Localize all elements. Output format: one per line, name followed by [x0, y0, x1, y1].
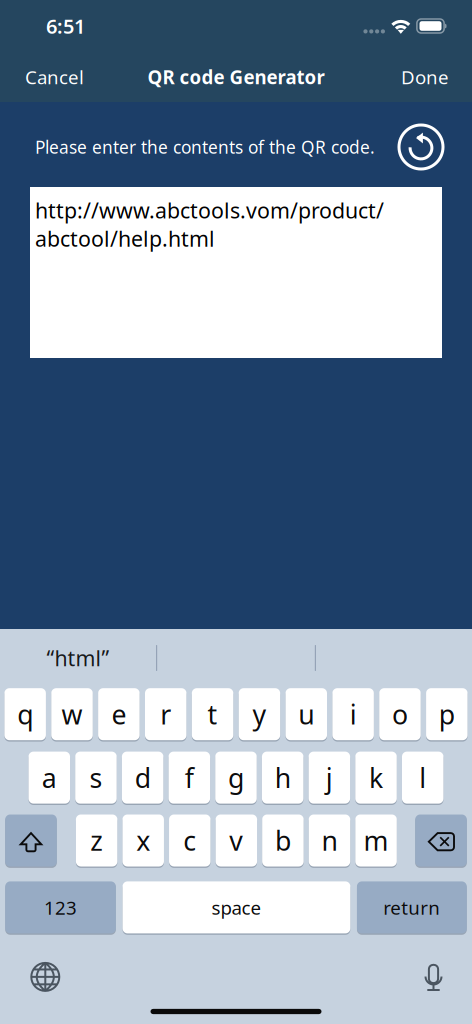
button[interactable]: “html” [0, 629, 156, 686]
button[interactable]: j [309, 751, 350, 804]
staticText: l [419, 760, 426, 795]
staticText: 6:51 [46, 13, 85, 39]
button[interactable]: y [239, 687, 280, 741]
button[interactable]: o [379, 687, 421, 741]
button[interactable]: Reset [398, 124, 444, 170]
staticText: g [228, 760, 244, 795]
staticText: x [136, 823, 150, 858]
button[interactable]: l [402, 751, 443, 804]
button[interactable]: z [76, 814, 117, 867]
staticText: Please enter the contents of the QR code… [35, 135, 375, 158]
button[interactable]: r [145, 687, 186, 741]
button[interactable]: f [169, 751, 210, 804]
staticText: f [185, 760, 194, 795]
button[interactable]: w [51, 687, 93, 741]
button[interactable]: x [122, 814, 164, 867]
staticText: q [17, 696, 33, 732]
button[interactable]: s [75, 751, 117, 804]
staticText: 123 [44, 895, 77, 920]
staticText: k [369, 760, 383, 795]
button[interactable]: i [332, 687, 374, 741]
button[interactable]: n [309, 814, 350, 867]
staticText: p [439, 696, 455, 732]
staticText: Done [401, 65, 449, 89]
staticText: c [183, 823, 196, 858]
staticText: “html” [46, 644, 109, 672]
button[interactable]: 123 [5, 881, 116, 934]
staticText: a [42, 760, 57, 795]
button[interactable]: q [4, 687, 46, 741]
staticText: z [90, 823, 103, 858]
button[interactable]: p [426, 687, 468, 741]
button[interactable]: c [169, 814, 210, 867]
button[interactable]: Cancel [0, 53, 100, 101]
button[interactable]: t [192, 687, 233, 741]
button[interactable]: u [285, 687, 327, 741]
staticText: i [350, 696, 357, 732]
staticText: w [61, 696, 82, 732]
staticText: j [326, 760, 333, 795]
staticText: r [160, 696, 171, 732]
button[interactable]: h [262, 751, 303, 804]
button[interactable]: g [215, 751, 257, 804]
button[interactable]: e [98, 687, 140, 741]
button[interactable]: Shift [5, 814, 57, 867]
button[interactable]: m [355, 814, 397, 867]
staticText: d [135, 760, 151, 795]
staticText: abctool/help.html [35, 224, 215, 253]
button[interactable]: a [28, 751, 70, 804]
button[interactable]: Done [385, 53, 472, 101]
button[interactable]: return [357, 881, 467, 934]
button[interactable]: v [216, 814, 257, 867]
staticText: http://www.abctools.vom/product/ [35, 196, 384, 224]
button[interactable]: Delete [415, 814, 467, 867]
staticText: s [89, 760, 102, 795]
staticText: o [392, 696, 408, 732]
button[interactable]: d [122, 751, 163, 804]
staticText: Cancel [25, 65, 84, 89]
staticText: space [211, 895, 261, 920]
staticText: u [298, 696, 314, 732]
button[interactable]: Switch keyboard [15, 953, 75, 1001]
staticText: y [252, 696, 266, 732]
staticText: b [275, 823, 291, 858]
staticText: return [383, 895, 440, 920]
button[interactable]: space [122, 881, 350, 934]
staticText: t [208, 696, 218, 732]
button[interactable]: k [355, 751, 397, 804]
staticText: e [111, 696, 126, 732]
staticText: n [321, 823, 337, 858]
staticText: h [275, 760, 291, 795]
staticText: m [364, 823, 389, 858]
button[interactable]: b [262, 814, 304, 867]
staticText: v [229, 823, 243, 858]
button[interactable]: Dictation [403, 953, 463, 1001]
staticText: QR code Generator [147, 65, 324, 89]
